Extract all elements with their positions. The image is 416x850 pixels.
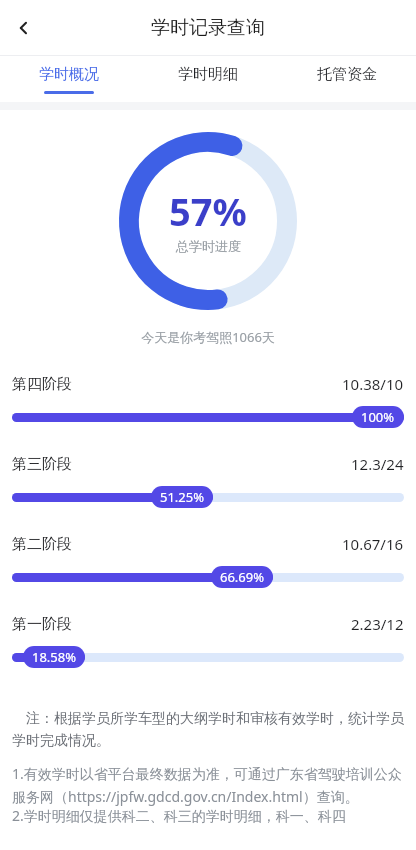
- staticText: 托管资金: [317, 65, 377, 84]
- button[interactable]: 第三阶段: [0, 454, 416, 534]
- staticText: 第四阶段: [12, 375, 72, 394]
- staticText: 57%: [169, 185, 247, 237]
- staticText: 18.58%: [32, 648, 77, 666]
- staticText: 2.23/12: [351, 614, 404, 634]
- staticText: 第一阶段: [12, 615, 72, 634]
- button[interactable]: Back: [0, 4, 48, 52]
- staticText: 10.38/10: [342, 374, 404, 394]
- staticText: 12.3/24: [351, 454, 404, 474]
- staticText: 2.学时明细仅提供科二、科三的学时明细，科一、科四: [12, 806, 346, 825]
- staticText: 1.有效学时以省平台最终数据为准，可通过广东省驾驶培训公众服务网（https:/…: [12, 764, 404, 806]
- button[interactable]: 第二阶段: [0, 534, 416, 614]
- staticText: 学时记录查询: [151, 16, 265, 40]
- button[interactable]: 学时明细: [138, 56, 277, 102]
- staticText: 第三阶段: [12, 455, 72, 474]
- staticText: 51.25%: [160, 488, 205, 506]
- button[interactable]: 第四阶段: [0, 374, 416, 454]
- staticText: 注：根据学员所学车型的大纲学时和审核有效学时，统计学员学时完成情况。: [12, 708, 404, 750]
- staticText: 第二阶段: [12, 535, 72, 554]
- button[interactable]: 第一阶段: [0, 614, 416, 694]
- staticText: 10.67/16: [342, 534, 404, 554]
- staticText: 学时明细: [178, 65, 238, 84]
- staticText: 66.69%: [220, 568, 265, 586]
- button[interactable]: 学时概况: [0, 56, 138, 102]
- staticText: 学时概况: [39, 65, 99, 84]
- button[interactable]: 托管资金: [277, 56, 416, 102]
- staticText: 总学时进度: [176, 238, 241, 254]
- staticText: 100%: [361, 408, 395, 426]
- staticText: 今天是你考驾照1066天: [0, 328, 416, 346]
